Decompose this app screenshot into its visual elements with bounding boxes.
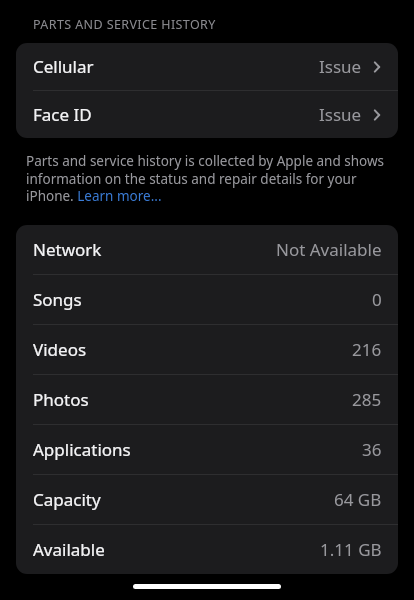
- staticText: Photos: [33, 388, 89, 411]
- button[interactable]: Applications: [16, 425, 398, 474]
- staticText: Cellular: [33, 55, 94, 78]
- button[interactable]: Available: [16, 525, 398, 574]
- staticText: Parts and service history is collected b…: [26, 152, 394, 205]
- button[interactable]: Network: [16, 225, 398, 274]
- staticText: 0: [372, 288, 382, 311]
- button[interactable]: Songs: [16, 275, 398, 324]
- button[interactable]: Cellular: [16, 43, 398, 90]
- staticText: 64 GB: [334, 488, 382, 511]
- staticText: 216: [352, 338, 382, 361]
- staticText: Issue: [319, 55, 362, 78]
- staticText: PARTS AND SERVICE HISTORY: [33, 16, 216, 33]
- staticText: Songs: [33, 288, 82, 311]
- button[interactable]: Photos: [16, 375, 398, 424]
- staticText: Videos: [33, 338, 87, 361]
- staticText: 1.11 GB: [320, 538, 382, 561]
- staticText: Applications: [33, 438, 131, 461]
- staticText: Face ID: [33, 103, 92, 126]
- button[interactable]: Face ID: [16, 91, 398, 138]
- staticText: Network: [33, 238, 102, 261]
- button[interactable]: Capacity: [16, 475, 398, 524]
- staticText: Available: [33, 538, 105, 561]
- staticText: Not Available: [276, 238, 382, 261]
- staticText: 285: [352, 388, 382, 411]
- staticText: Capacity: [33, 488, 101, 511]
- staticText: Issue: [319, 103, 362, 126]
- staticText: 36: [362, 438, 382, 461]
- button[interactable]: Videos: [16, 325, 398, 374]
